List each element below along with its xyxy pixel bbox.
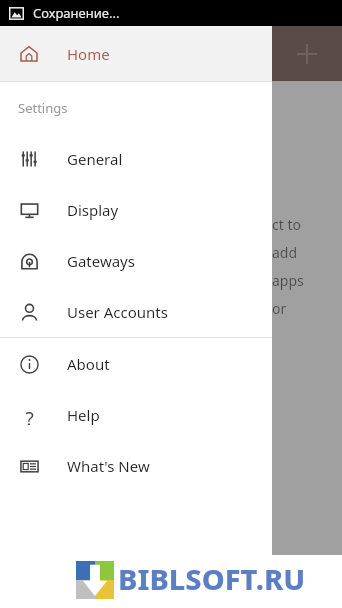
button[interactable]: Add: [272, 26, 342, 81]
staticText: ?: [25, 406, 34, 425]
staticText: Сохранение...: [33, 4, 120, 22]
staticText: or: [272, 299, 287, 318]
button[interactable]: Gateways: [0, 235, 272, 286]
staticText: add: [272, 243, 298, 262]
staticText: About: [67, 354, 110, 374]
staticText: Gateways: [67, 251, 135, 271]
button[interactable]: About: [0, 338, 272, 389]
staticText: Help: [67, 405, 100, 425]
staticText: BIBLSOFT.RU: [118, 559, 306, 598]
staticText: ct to: [272, 215, 301, 234]
staticText: Display: [67, 200, 119, 220]
button[interactable]: ?: [0, 389, 272, 440]
button[interactable]: Display: [0, 184, 272, 235]
staticText: Home: [67, 44, 110, 64]
button[interactable]: General: [0, 133, 272, 184]
button[interactable]: User Accounts: [0, 286, 272, 337]
staticText: User Accounts: [67, 302, 168, 322]
staticText: Settings: [18, 99, 68, 117]
button[interactable]: Close navigation drawer: [272, 26, 342, 555]
staticText: apps: [272, 271, 304, 290]
staticText: What's New: [67, 456, 150, 476]
button[interactable]: What's New: [0, 440, 272, 491]
button[interactable]: Home: [0, 26, 272, 81]
staticText: General: [67, 149, 123, 169]
